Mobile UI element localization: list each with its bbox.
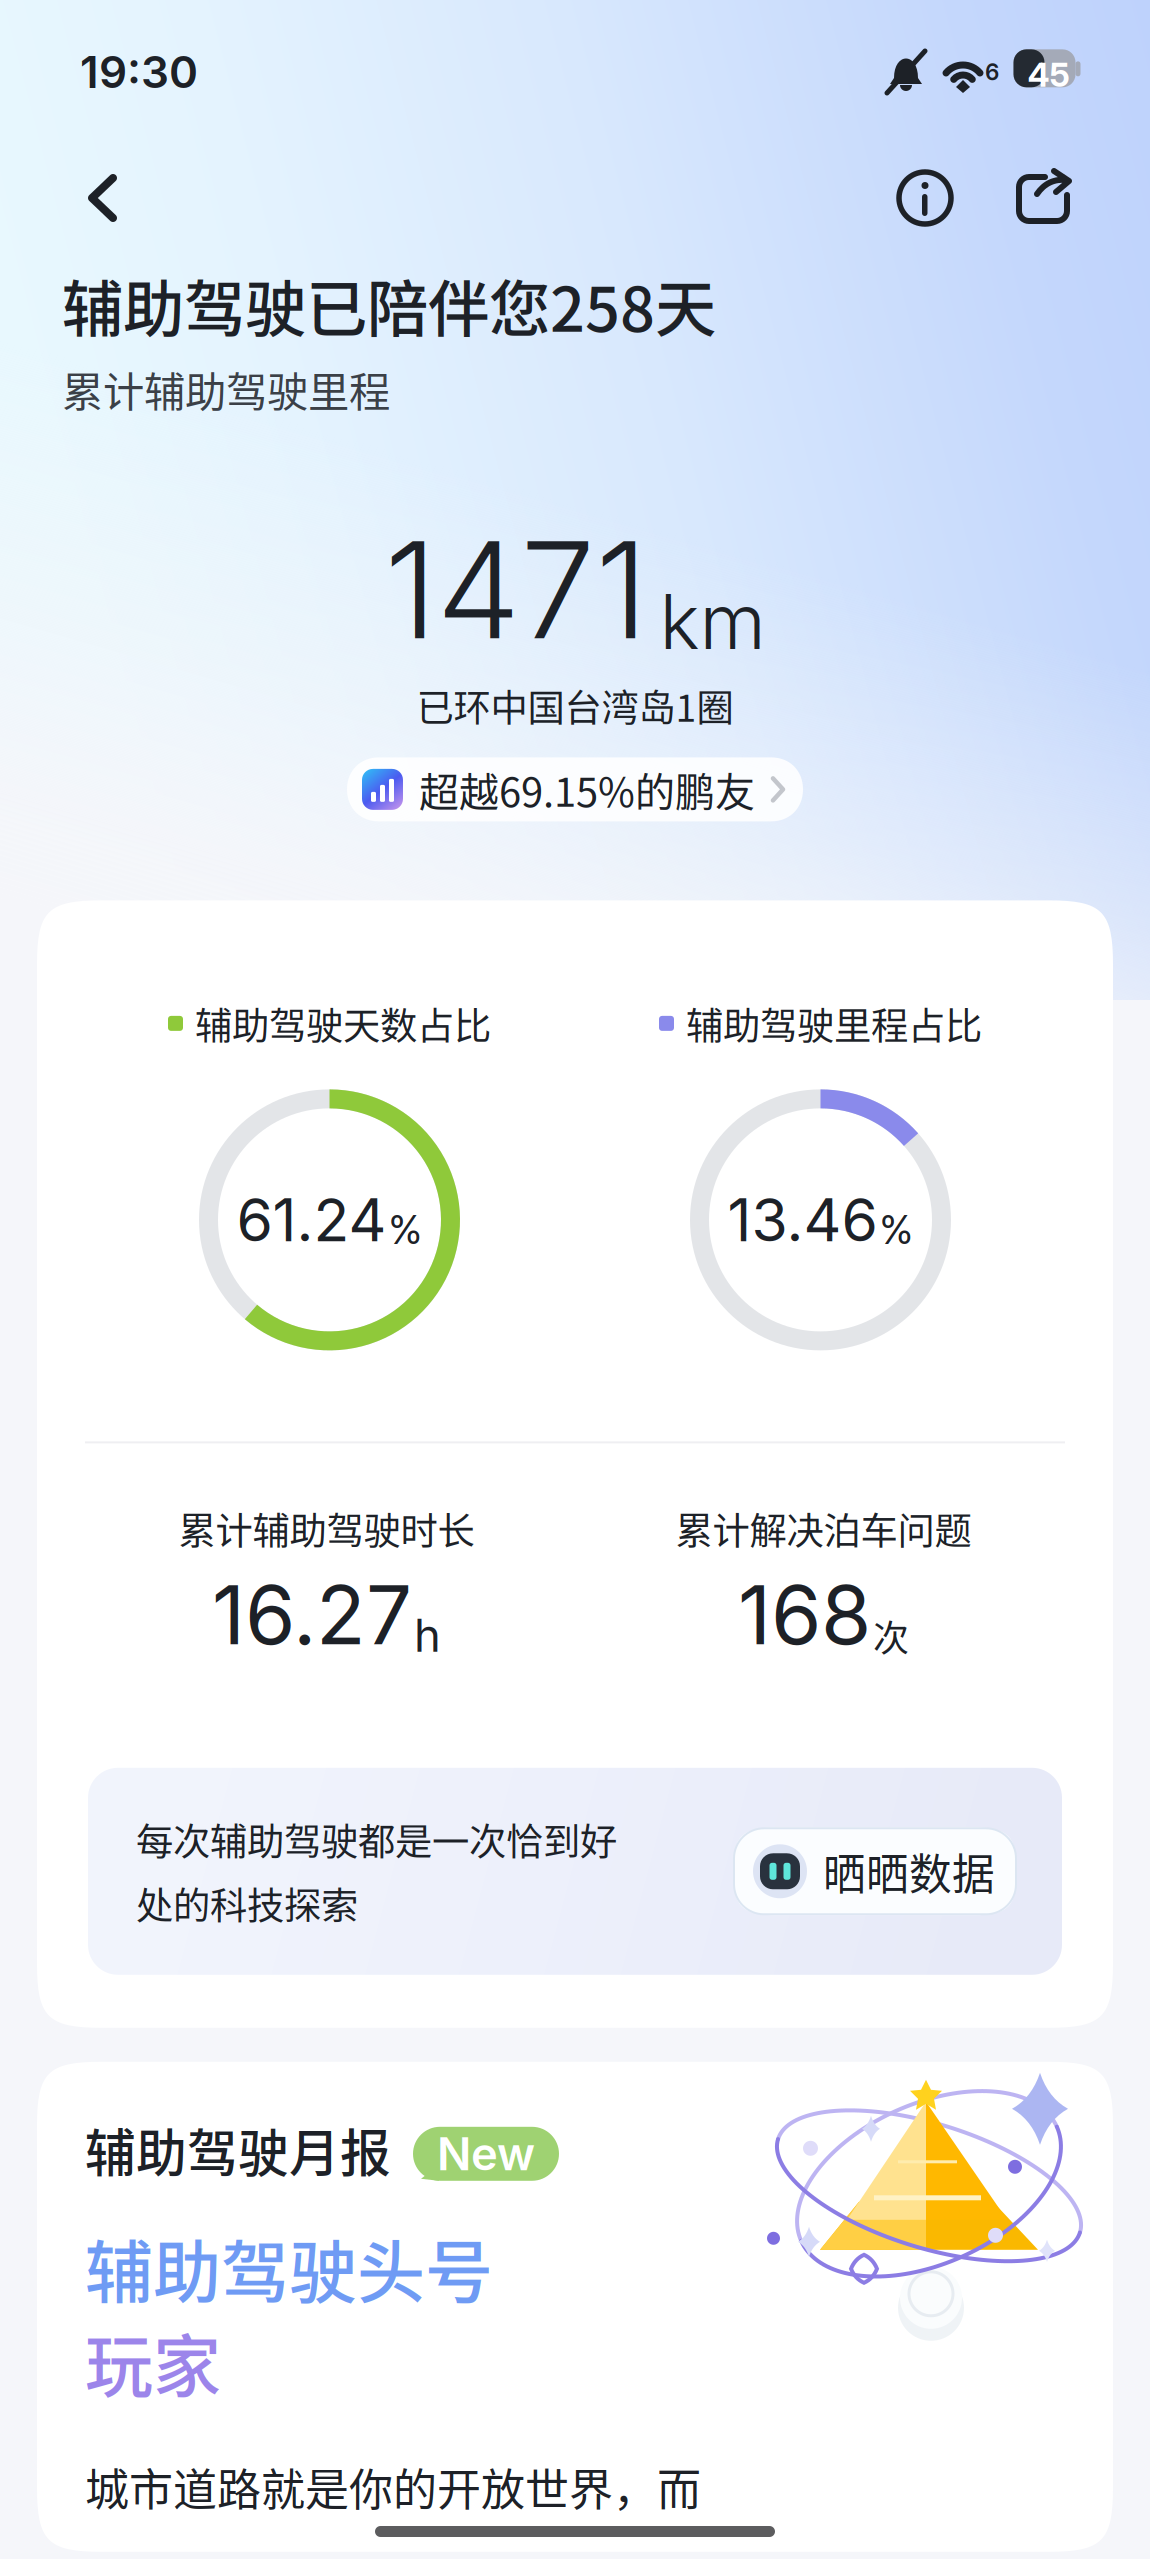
staticText: 超越69.15%的鹏友 [419, 760, 755, 818]
staticText: km [659, 575, 765, 667]
staticText: 已环中国台湾岛1圈 [416, 678, 733, 732]
staticText: 处的科技探索 [136, 1876, 358, 1930]
staticText: 晒晒数据 [823, 1840, 995, 1902]
staticText: 累计辅助驾驶里程 [62, 359, 390, 419]
staticText: 城市道路就是你的开放世界，而 [85, 2455, 701, 2519]
staticText: 每次辅助驾驶都是一次恰到好 [136, 1812, 617, 1866]
button[interactable]: 超越69.15%的鹏友 [347, 757, 803, 821]
staticText: 累计辅助驾驶时长 [178, 1501, 474, 1555]
staticText: 19:30 [80, 45, 198, 99]
staticText: 辅助驾驶已陪伴您258天 [62, 261, 716, 349]
staticText: 6 [985, 58, 999, 86]
staticText: h [414, 1608, 441, 1663]
staticText: 累计解决泊车问题 [675, 1501, 971, 1555]
staticText: % [879, 1207, 913, 1253]
staticText: 辅助驾驶里程占比 [686, 996, 982, 1050]
staticText: New [437, 2126, 535, 2181]
staticText: 辅助驾驶月报 [85, 2113, 391, 2186]
staticText: 玩家 [85, 2313, 221, 2411]
staticText: 辅助驾驶头号 [85, 2219, 493, 2317]
staticText: 1471 [384, 509, 647, 670]
staticText: 13.46 [727, 1184, 877, 1255]
button[interactable]: Share [997, 151, 1150, 245]
staticText: 辅助驾驶天数占比 [195, 996, 491, 1050]
button[interactable]: Back [0, 152, 158, 244]
staticText: % [388, 1207, 422, 1253]
staticText: 168 [738, 1565, 871, 1664]
staticText: 45 [1027, 54, 1069, 95]
staticText: 次 [873, 1610, 909, 1662]
button[interactable]: 晒晒数据 [733, 1827, 1017, 1915]
staticText: 16.27 [212, 1565, 412, 1664]
button[interactable]: Info [878, 151, 997, 245]
staticText: 61.24 [236, 1184, 386, 1255]
